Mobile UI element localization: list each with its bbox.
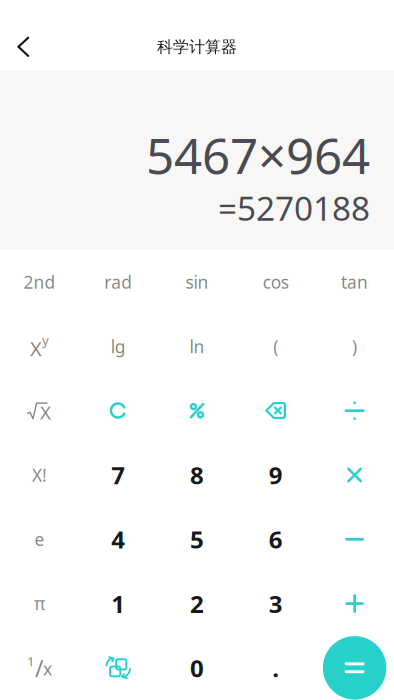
button[interactable]: lg [79, 314, 158, 379]
staticText: 0 [190, 652, 204, 684]
staticText: cos [263, 271, 289, 294]
button[interactable]: ( [236, 314, 315, 379]
staticText: e [34, 528, 44, 551]
staticText: 2 [190, 588, 204, 619]
staticText: 5 [190, 523, 204, 555]
button[interactable]: 9 [236, 443, 315, 507]
staticText: 4 [111, 523, 125, 555]
button[interactable]: Back [0, 24, 47, 70]
staticText: π [34, 592, 45, 615]
button[interactable]: Square root [0, 379, 79, 443]
button[interactable]: 2nd [0, 250, 79, 314]
button[interactable]: 6 [236, 507, 315, 571]
staticText: 9 [269, 459, 283, 491]
staticText: 1 [111, 588, 125, 619]
button[interactable]: sin [158, 250, 236, 314]
button[interactable]: ln [158, 314, 236, 379]
staticText: 科学计算器 [157, 37, 237, 57]
button[interactable]: π [0, 571, 79, 636]
staticText: 2nd [23, 271, 55, 294]
button[interactable]: Equals [315, 636, 394, 700]
button[interactable]: 1 [79, 571, 158, 636]
staticText: . [272, 652, 279, 684]
button[interactable]: . [236, 636, 315, 700]
button[interactable]: 3 [236, 571, 315, 636]
button[interactable]: Divide [315, 379, 394, 443]
button[interactable]: 7 [79, 443, 158, 507]
button[interactable]: 4 [79, 507, 158, 571]
staticText: 3 [269, 588, 283, 619]
staticText: tan [341, 271, 368, 294]
staticText: 6 [269, 523, 283, 555]
button[interactable]: ) [315, 314, 394, 379]
button[interactable]: x to the power of y [0, 314, 79, 379]
staticText: X [30, 335, 42, 362]
staticText: x [43, 657, 52, 680]
button[interactable]: Plus [315, 571, 394, 636]
staticText: 5467×964 [146, 122, 370, 188]
button[interactable]: Backspace [236, 379, 315, 443]
button[interactable]: Clear [79, 379, 158, 443]
button[interactable]: Percent [158, 379, 236, 443]
staticText: sin [185, 271, 208, 294]
staticText: 7 [111, 459, 125, 491]
button[interactable]: cos [236, 250, 315, 314]
staticText: lg [111, 335, 126, 358]
button[interactable]: 2 [158, 571, 236, 636]
button[interactable]: 0 [158, 636, 236, 700]
button[interactable]: tan [315, 250, 394, 314]
button[interactable]: Minus [315, 507, 394, 571]
button[interactable]: rad [79, 250, 158, 314]
staticText: 1 [27, 652, 35, 670]
staticText: ) [352, 335, 357, 358]
button[interactable]: One over x [0, 636, 79, 700]
button[interactable]: X! [0, 443, 79, 507]
staticText: y [42, 331, 49, 349]
staticText: X [40, 400, 51, 425]
staticText: =5270188 [218, 186, 370, 230]
staticText: ln [189, 335, 204, 358]
staticText: ( [273, 335, 278, 358]
staticText: rad [104, 271, 132, 294]
staticText: X! [32, 463, 47, 486]
staticText: / [35, 653, 43, 683]
button[interactable]: Convert units [79, 636, 158, 700]
staticText: 8 [190, 459, 204, 491]
button[interactable]: 5 [158, 507, 236, 571]
button[interactable]: Multiply [315, 443, 394, 507]
button[interactable]: e [0, 507, 79, 571]
button[interactable]: 8 [158, 443, 236, 507]
